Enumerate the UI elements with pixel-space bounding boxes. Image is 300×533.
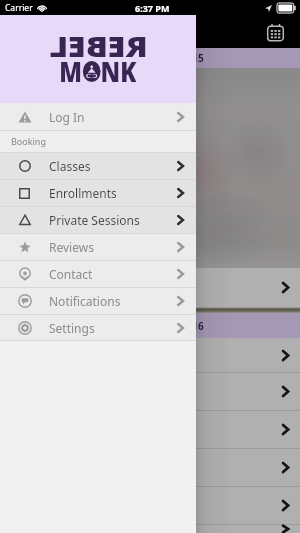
staticText: Reviews	[49, 239, 94, 255]
button[interactable]	[0, 338, 300, 373]
staticText: Notifications	[49, 293, 121, 309]
staticText: M	[59, 52, 83, 90]
staticText: REBEL	[49, 27, 148, 65]
button[interactable]	[0, 449, 300, 487]
staticText: Enrollments	[49, 185, 117, 201]
button[interactable]	[0, 373, 300, 411]
staticText: Booking	[11, 135, 46, 147]
button[interactable]: Contact	[0, 261, 196, 288]
staticText: Contact	[49, 266, 93, 282]
button[interactable]	[0, 268, 300, 308]
button[interactable]: Log In	[0, 103, 196, 131]
staticText: Log In	[49, 109, 85, 125]
button[interactable]	[0, 487, 300, 525]
button[interactable]	[0, 525, 300, 533]
button[interactable]: Classes	[0, 153, 196, 180]
staticText: Tue 15	[172, 51, 204, 65]
button[interactable]: Reviews	[0, 234, 196, 261]
staticText: Settings	[49, 320, 95, 336]
staticText: 6:37 PM	[135, 2, 170, 14]
button[interactable]: Notifications	[0, 288, 196, 315]
staticText: Private Sessions	[49, 212, 140, 228]
button[interactable]: Calendar	[264, 21, 286, 43]
staticText: Wed 16	[168, 319, 204, 333]
button[interactable]: Enrollments	[0, 180, 196, 207]
staticText: Classes	[49, 158, 91, 174]
button[interactable]	[0, 411, 300, 449]
staticText: Carrier	[5, 2, 33, 14]
button[interactable]: Private Sessions	[0, 207, 196, 234]
button[interactable]: Settings	[0, 315, 196, 341]
staticText: NK	[100, 52, 137, 90]
